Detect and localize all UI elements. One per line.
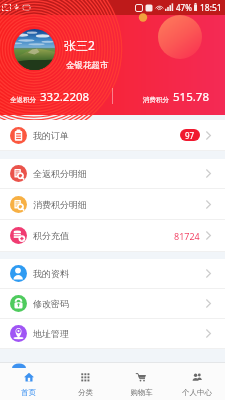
button[interactable]: 分类 bbox=[57, 363, 113, 400]
staticText: 积分充值 bbox=[33, 230, 69, 241]
staticText: 全返积分 bbox=[10, 96, 36, 104]
staticText: 个人中心 bbox=[182, 388, 212, 397]
staticText: 购物车 bbox=[130, 388, 153, 397]
button[interactable]: 购物车 bbox=[113, 363, 169, 400]
staticText: 我的资料 bbox=[33, 268, 69, 279]
button[interactable]: 积分充值 bbox=[0, 220, 225, 252]
staticText: 修改密码 bbox=[33, 298, 69, 309]
staticText: 消费积分 bbox=[143, 96, 169, 104]
button[interactable]: 消费积分明细 bbox=[0, 189, 225, 220]
button[interactable]: 地址管理 bbox=[0, 319, 225, 349]
button[interactable]: Profile photo bbox=[14, 29, 55, 70]
staticText: 消费积分明细 bbox=[33, 199, 87, 210]
staticText: 515.78 bbox=[173, 89, 209, 105]
button[interactable]: 修改密码 bbox=[0, 289, 225, 319]
staticText: 金银花超市 bbox=[66, 60, 109, 71]
button[interactable]: 首页 bbox=[0, 363, 57, 400]
staticText: 332.2208 bbox=[40, 89, 90, 105]
staticText: 81724 bbox=[174, 230, 200, 242]
button[interactable]: 我的资料 bbox=[0, 259, 225, 289]
button[interactable]: 我的订单 bbox=[0, 120, 225, 151]
staticText: 我的订单 bbox=[33, 130, 69, 141]
staticText: 全返积分明细 bbox=[33, 168, 87, 179]
button[interactable]: 全返积分明细 bbox=[0, 159, 225, 189]
staticText: 首页 bbox=[21, 388, 36, 397]
staticText: 97 bbox=[185, 130, 195, 141]
button[interactable]: 个人中心 bbox=[169, 363, 225, 400]
staticText: 地址管理 bbox=[33, 328, 69, 339]
staticText: 分类 bbox=[78, 388, 93, 397]
staticText: 张三2 bbox=[64, 37, 95, 53]
staticText: 18:51 bbox=[200, 2, 222, 14]
staticText: 47% bbox=[176, 2, 192, 13]
